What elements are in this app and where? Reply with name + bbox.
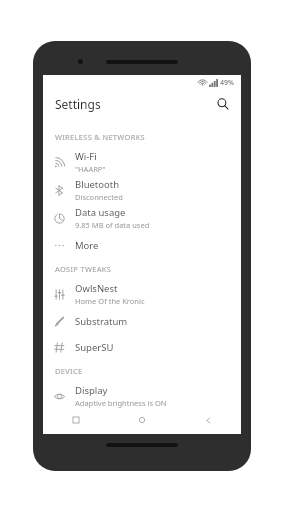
staticText: SuperSU (75, 341, 114, 354)
staticText: Bluetooth (75, 178, 120, 191)
button[interactable]: Search (213, 94, 233, 114)
button[interactable]: Home (109, 412, 175, 428)
staticText: Home Of the Kronic (75, 296, 145, 306)
staticText: 9.85 MB of data used (75, 220, 150, 230)
button[interactable]: Substratum (43, 308, 241, 334)
button[interactable]: Wi‑Fi (43, 148, 241, 176)
button[interactable]: Data usage (43, 204, 241, 232)
button[interactable]: Back (175, 412, 241, 428)
button[interactable]: SuperSU (43, 334, 241, 360)
button[interactable]: Bluetooth (43, 176, 241, 204)
staticText: Wi‑Fi (75, 150, 97, 163)
staticText: "HAARP" (75, 164, 106, 174)
staticText: Adaptive brightness is ON (75, 398, 167, 408)
staticText: AOSIP TWEAKS (55, 264, 112, 274)
staticText: 49% (220, 78, 234, 88)
button[interactable]: Recents (43, 412, 109, 428)
button[interactable]: OwlsNest (43, 280, 241, 308)
staticText: More (75, 239, 99, 252)
staticText: Settings (55, 96, 101, 112)
staticText: OwlsNest (75, 282, 118, 295)
staticText: Data usage (75, 206, 126, 219)
staticText: DEVICE (55, 366, 83, 376)
staticText: Display (75, 384, 108, 397)
staticText: WIRELESS & NETWORKS (55, 132, 145, 142)
staticText: Substratum (75, 315, 128, 328)
button[interactable]: Display (43, 382, 241, 410)
staticText: Disconnected (75, 192, 123, 202)
button[interactable]: More (43, 232, 241, 258)
